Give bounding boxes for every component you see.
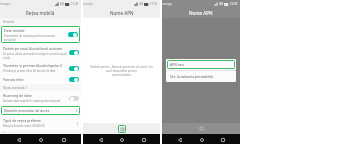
button[interactable]: On (69, 77, 79, 82)
button[interactable]: Numele punctului de acces (1, 106, 80, 115)
staticText: orange (83, 2, 94, 6)
button[interactable]: Add APN (118, 125, 126, 133)
staticText: Funcția elite (3, 77, 24, 82)
staticText: Datele pe roțul blocărilorul activate (3, 46, 63, 51)
button[interactable]: Home (197, 135, 206, 144)
staticText: 4G (219, 2, 223, 6)
staticText: Roaming de date (3, 93, 32, 98)
staticText: Nume APN (189, 10, 213, 16)
staticText: Activare date mobile în roaming internaț… (3, 99, 61, 103)
button[interactable]: Recents (59, 135, 68, 144)
button[interactable]: APN nou (167, 60, 235, 69)
button[interactable]: Date mobile (1, 26, 80, 43)
staticText: Date mobile (4, 28, 25, 33)
staticText: 11:31 (230, 2, 238, 6)
button[interactable]: Funcția elite (0, 75, 81, 84)
staticText: Mod preferat de rețea: 4G/3G/2G (3, 124, 45, 128)
button[interactable]: Back (96, 135, 105, 144)
staticText: Rețea mobilă (26, 10, 55, 16)
staticText: Trimitere și primire blocări/apeluri/MMS (3, 63, 67, 68)
button[interactable]: Home (117, 135, 126, 144)
button[interactable]: On (69, 66, 79, 71)
staticText: orange (162, 2, 173, 6)
button[interactable]: Recents (218, 135, 227, 144)
staticText: Numele punctului de acces (4, 108, 50, 113)
staticText: General (3, 20, 15, 24)
staticText: Rețea avansată 1 (3, 86, 27, 90)
button[interactable]: Tipul de rețea preferat (0, 116, 81, 130)
staticText: 11:31 (71, 2, 79, 6)
button[interactable]: On (68, 32, 78, 37)
button[interactable]: Recents (139, 135, 148, 144)
staticText: Tipul de rețea preferat (3, 118, 41, 123)
staticText: Nume APN (110, 10, 134, 16)
button[interactable]: Trimitere și primire blocări/apeluri/MMS (0, 61, 81, 75)
staticText: Setările pentru „Numele punctelor de acc… (88, 65, 155, 77)
staticText: APN nou (170, 62, 184, 67)
button[interactable]: Back (175, 135, 184, 144)
button[interactable]: Datele pe roțul blocărilorul activate (0, 44, 81, 61)
staticText: Operator (3, 132, 16, 133)
staticText: 4G (60, 2, 64, 6)
staticText: Trimiteți și primiți efect fel servicii … (3, 69, 56, 73)
staticText: 11:31 (150, 2, 158, 6)
staticText: Se activa utiliza una mobil energia în a… (3, 52, 67, 59)
button[interactable]: On (69, 50, 79, 55)
staticText: Set. la valoarea prestabilită (170, 74, 213, 79)
button[interactable]: Back (14, 135, 23, 144)
button[interactable]: Home (36, 135, 45, 144)
button[interactable]: Roaming de date (0, 91, 81, 105)
button[interactable]: Set. la valoarea prestabilită (166, 71, 236, 82)
button[interactable]: Off (69, 96, 79, 101)
staticText: orange (0, 2, 11, 6)
staticText: 4G (139, 2, 143, 6)
staticText: Transmiteți de rețeaua pentru accesarea … (4, 34, 66, 41)
